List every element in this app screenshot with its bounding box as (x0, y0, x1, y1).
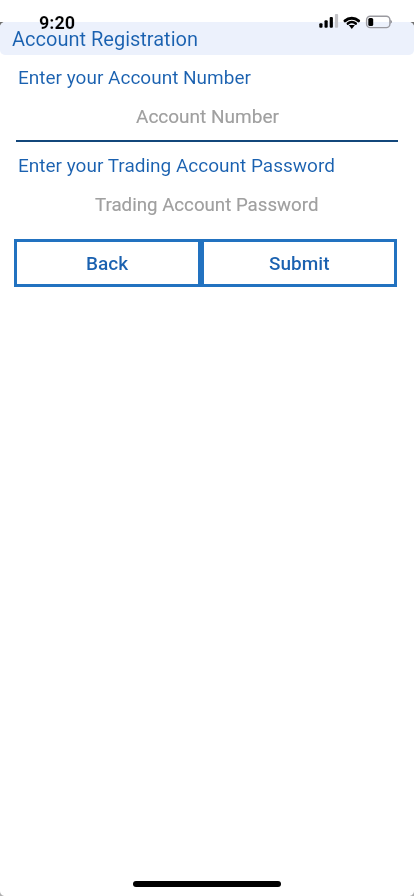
button[interactable]: Account Number input field (0, 96, 414, 142)
staticText: Back (86, 252, 129, 274)
staticText: Enter your Trading Account Password (18, 154, 335, 176)
staticText: Enter your Account Number (18, 66, 251, 88)
button[interactable]: Trading Account Password input field (0, 184, 414, 230)
other: Cellular signal, Wi-Fi and battery statu… (0, 0, 414, 44)
staticText: 9:20 (39, 12, 76, 33)
staticText: Trading Account Password (95, 194, 319, 216)
staticText: Account Number (136, 105, 279, 127)
staticText: Submit (269, 252, 330, 274)
staticText: Account Registration (12, 27, 198, 50)
button[interactable]: Submit (201, 239, 397, 287)
button[interactable]: Back (14, 239, 201, 287)
